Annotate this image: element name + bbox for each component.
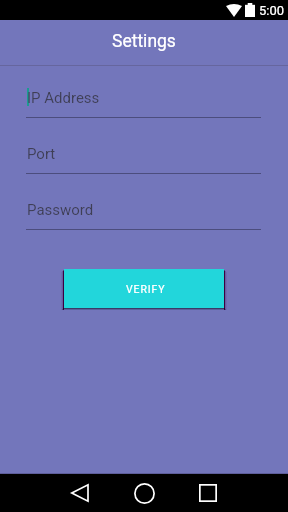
- staticText: Port: [27, 145, 56, 163]
- button[interactable]: IP Address: [26, 85, 261, 118]
- staticText: Settings: [112, 31, 176, 52]
- button[interactable]: VERIFY: [64, 269, 224, 308]
- staticText: 5:00: [259, 3, 285, 18]
- staticText: Password: [27, 201, 94, 219]
- button[interactable]: Password: [26, 197, 261, 230]
- button[interactable]: Port: [26, 141, 261, 174]
- staticText: IP Address: [27, 89, 100, 107]
- staticText: VERIFY: [126, 283, 166, 295]
- button[interactable]: Home: [120, 474, 168, 512]
- button[interactable]: Back: [55, 474, 103, 512]
- button[interactable]: Recent apps: [184, 474, 232, 512]
